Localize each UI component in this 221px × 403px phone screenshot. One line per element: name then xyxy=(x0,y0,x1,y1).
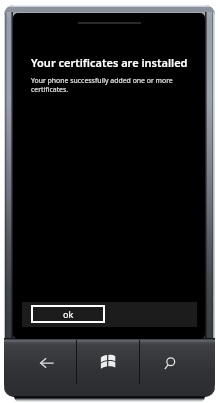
staticText: ok xyxy=(63,308,74,320)
button[interactable]: Start xyxy=(77,338,139,395)
staticText: Your certificates are installed xyxy=(31,55,188,70)
button[interactable]: Search xyxy=(140,338,213,395)
button[interactable]: Back xyxy=(4,338,76,395)
button[interactable]: ok xyxy=(31,305,105,323)
staticText: Your phone successfully added one or mor… xyxy=(31,76,193,94)
